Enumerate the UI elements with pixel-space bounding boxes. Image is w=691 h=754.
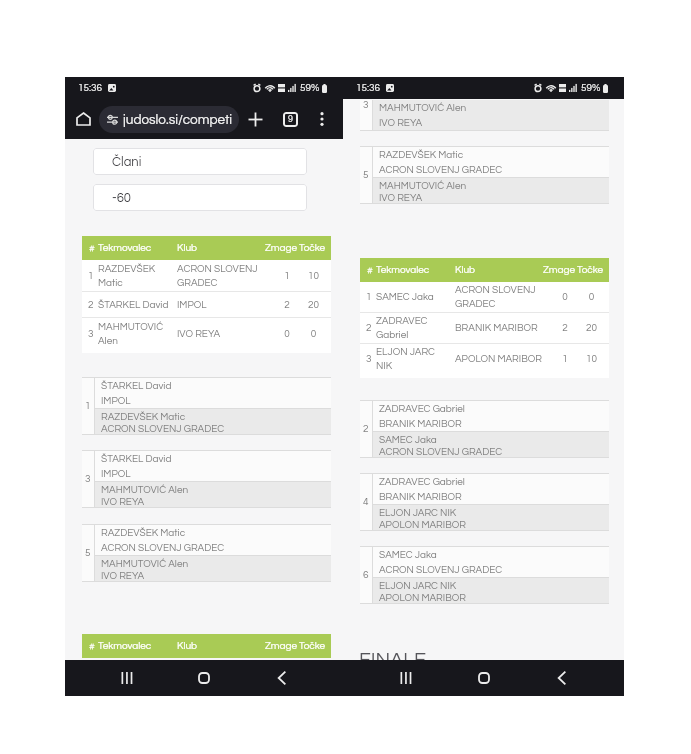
button[interactable]: More options (313, 110, 331, 128)
button[interactable]: 2 (360, 400, 609, 458)
staticText: ŠTARKEL David (101, 454, 172, 464)
staticText: 9 (288, 115, 293, 124)
staticText: 3 (85, 474, 91, 484)
staticText: IMPOL (101, 469, 131, 479)
button[interactable]: Člani (93, 148, 307, 175)
staticText: IVO REYA (101, 497, 145, 507)
staticText: # (89, 641, 98, 651)
staticText: 15:36 (356, 83, 381, 93)
button[interactable]: Home page (71, 107, 95, 131)
staticText: Zmage (265, 243, 297, 253)
staticText: 3 (366, 354, 376, 364)
button[interactable]: Home (187, 661, 221, 695)
staticText: IVO REYA (379, 118, 423, 128)
staticText: Klub (177, 243, 265, 253)
button[interactable]: 2 (82, 292, 331, 317)
staticText: 10 (578, 354, 605, 364)
staticText: ZADRAVEC Gabriel (379, 404, 465, 414)
staticText: MAHMUTOVIĆ Alen (101, 485, 189, 495)
button[interactable]: 5 (360, 146, 609, 204)
staticText: 1 (85, 401, 91, 411)
button[interactable]: New tab (243, 107, 267, 131)
staticText: APOLON MARIBOR (455, 354, 552, 364)
staticText: 0 (274, 329, 300, 339)
staticText: judoslo.si/competi (123, 113, 233, 127)
staticText: Tekmovalec (376, 265, 449, 275)
button[interactable]: 2 (360, 313, 609, 343)
button[interactable]: 1 (82, 377, 331, 435)
staticText: IVO REYA (101, 571, 145, 581)
button[interactable]: 3 (82, 318, 331, 349)
staticText: SAMEC Jaka (379, 435, 437, 445)
staticText: 2 (363, 424, 369, 434)
staticText: RAZDEVŠEK Matic (379, 150, 464, 160)
button[interactable]: Back (265, 661, 299, 695)
staticText: 59% (581, 83, 601, 93)
staticText: 2 (552, 323, 578, 333)
staticText: SAMEC Jaka (376, 292, 449, 302)
staticText: ACRON SLOVENJ GRADEC (101, 424, 225, 434)
button[interactable]: 3 (360, 344, 609, 374)
button[interactable]: 5 (82, 524, 331, 582)
staticText: # (367, 265, 376, 275)
button[interactable]: 3 (360, 100, 609, 131)
staticText: 2 (88, 300, 98, 310)
button[interactable]: Home (467, 661, 501, 695)
staticText: ACRON SLOVENJ GRADEC (101, 543, 225, 553)
staticText: 6 (363, 570, 369, 580)
staticText: ACRON SLOVENJ GRADEC (379, 565, 503, 575)
staticText: 1 (552, 354, 578, 364)
button[interactable]: Recent apps (388, 661, 422, 695)
staticText: MAHMUTOVIĆ Alen (98, 322, 171, 346)
staticText: ACRON SLOVENJ GRADEC (379, 165, 503, 175)
staticText: 1 (88, 271, 98, 281)
button[interactable]: -60 (93, 184, 307, 211)
button[interactable]: Back (545, 661, 579, 695)
staticText: ZADRAVEC Gabriel (379, 477, 465, 487)
button[interactable]: 1 (360, 282, 609, 312)
staticText: BRANIK MARIBOR (379, 419, 462, 429)
staticText: Točke (577, 265, 604, 275)
staticText: APOLON MARIBOR (379, 593, 466, 603)
staticText: ŠTARKEL David (101, 381, 172, 391)
staticText: APOLON MARIBOR (379, 520, 466, 530)
button[interactable]: 6 (360, 546, 609, 604)
staticText: ACRON SLOVENJ GRADEC (455, 285, 552, 309)
staticText: ELJON JARC NIK (379, 508, 457, 518)
staticText: 59% (300, 83, 320, 93)
staticText: 10 (300, 271, 327, 281)
staticText: Klub (177, 641, 265, 651)
staticText: 2 (366, 323, 376, 333)
staticText: Tekmovalec (98, 243, 171, 253)
staticText: BRANIK MARIBOR (455, 323, 552, 333)
button[interactable]: 1 (82, 260, 331, 291)
staticText: FINALE (359, 650, 427, 671)
button[interactable]: 3 (82, 450, 331, 508)
staticText: 0 (578, 292, 605, 302)
staticText: IMPOL (177, 300, 274, 310)
staticText: MAHMUTOVIĆ Alen (101, 559, 189, 569)
staticText: 1 (274, 271, 300, 281)
staticText: -60 (112, 191, 131, 204)
staticText: Točke (299, 243, 326, 253)
button[interactable]: judoslo.si/competi (99, 106, 239, 133)
staticText: ELJON JARC NIK (379, 581, 457, 591)
staticText: Klub (455, 265, 543, 275)
button[interactable]: 4 (360, 473, 609, 531)
staticText: 0 (552, 292, 578, 302)
staticText: 0 (300, 329, 327, 339)
staticText: 20 (578, 323, 605, 333)
button[interactable]: Open tabs: 9 (278, 107, 302, 131)
staticText: IMPOL (101, 396, 131, 406)
staticText: IVO REYA (379, 193, 423, 203)
staticText: Zmage (265, 641, 297, 651)
staticText: RAZDEVŠEK Matic (101, 412, 186, 422)
staticText: RAZDEVŠEK Matic (101, 528, 186, 538)
button[interactable]: Recent apps (109, 661, 143, 695)
staticText: Zmage (543, 265, 575, 275)
staticText: Tekmovalec (98, 641, 171, 651)
staticText: 3 (88, 329, 98, 339)
staticText: 15:36 (78, 83, 103, 93)
staticText: 3 (363, 100, 369, 110)
staticText: ACRON SLOVENJ GRADEC (177, 264, 274, 288)
